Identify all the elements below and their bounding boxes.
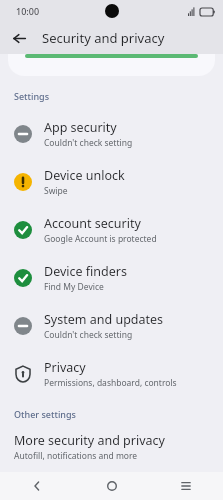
staticText: Device unlock	[44, 167, 125, 184]
button[interactable]: Privacy	[0, 350, 223, 398]
staticText: App security	[44, 119, 117, 136]
button[interactable]: Device unlock	[0, 158, 223, 206]
staticText: Other settings	[14, 408, 76, 420]
button[interactable]: Back	[24, 473, 50, 499]
staticText: Settings	[14, 90, 50, 102]
button[interactable]	[8, 54, 215, 76]
button[interactable]: App security	[0, 110, 223, 158]
staticText: System and updates	[44, 311, 164, 328]
staticText: Permissions, dashboard, controls	[44, 377, 177, 389]
staticText: Autofill, notifications and more	[14, 450, 138, 462]
staticText: 10:00	[16, 5, 40, 17]
staticText: Couldn't check setting	[44, 329, 133, 341]
button[interactable]: Device finders	[0, 254, 223, 302]
button[interactable]: Recents	[173, 473, 199, 499]
staticText: Device finders	[44, 263, 127, 280]
staticText: Swipe	[44, 185, 68, 197]
staticText: Couldn't check setting	[44, 137, 133, 149]
button[interactable]: Back	[6, 25, 32, 51]
button[interactable]: More security and privacy	[0, 428, 223, 470]
staticText: Security and privacy	[42, 29, 165, 47]
button[interactable]: Home	[99, 473, 125, 499]
staticText: Google Account is protected	[44, 233, 157, 245]
staticText: Privacy	[44, 359, 86, 376]
button[interactable]: System and updates	[0, 302, 223, 350]
staticText: More security and privacy	[14, 432, 165, 449]
button[interactable]: Account security	[0, 206, 223, 254]
staticText: Account security	[44, 215, 141, 232]
staticText: Find My Device	[44, 281, 104, 293]
